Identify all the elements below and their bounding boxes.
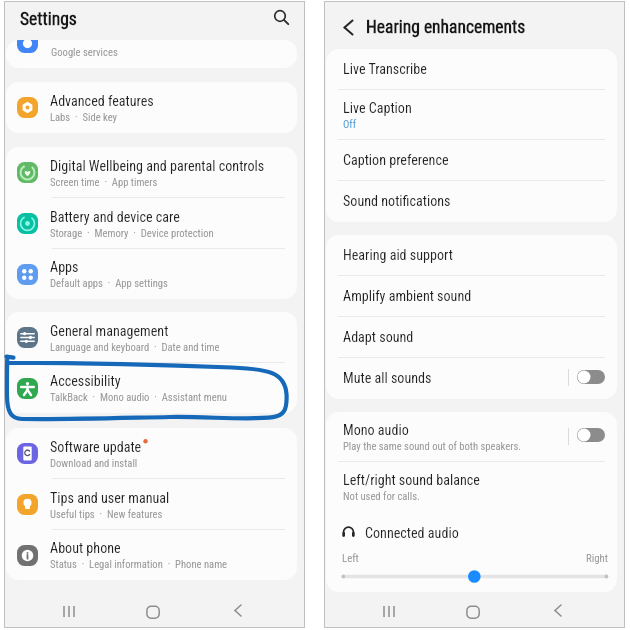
button[interactable]: Accessibility: [6, 363, 297, 413]
staticText: Sound notifications: [343, 193, 451, 210]
button[interactable]: Tips and user manual: [6, 479, 297, 530]
staticText: Connected audio: [365, 525, 459, 542]
button[interactable]: Mono audio: [326, 412, 617, 462]
staticText: Live Caption: [343, 100, 412, 117]
button[interactable]: Search: [267, 4, 293, 30]
staticText: Software update: [50, 439, 142, 456]
button[interactable]: Home: [458, 595, 488, 625]
button[interactable]: Navigate up: [338, 15, 362, 39]
button[interactable]: Recent apps: [374, 595, 404, 625]
staticText: About phone: [50, 540, 121, 557]
staticText: Battery and device care: [50, 209, 180, 226]
staticText: Default apps · App settings: [50, 277, 168, 289]
staticText: Tips and user manual: [50, 490, 170, 507]
staticText: Accessibility: [50, 373, 121, 390]
staticText: Status · Legal information · Phone name: [50, 558, 228, 570]
staticText: Hearing enhancements: [366, 17, 526, 38]
staticText: Mono audio: [343, 422, 409, 439]
button[interactable]: Adapt sound: [326, 317, 617, 358]
button[interactable]: Recent apps: [54, 595, 84, 625]
staticText: Advanced features: [50, 93, 154, 110]
staticText: Apps: [50, 259, 79, 276]
staticText: Digital Wellbeing and parental controls: [50, 158, 265, 175]
button[interactable]: Software update: [6, 428, 297, 479]
button[interactable]: Left/right sound balance: [326, 462, 617, 512]
staticText: Useful tips · New features: [50, 508, 163, 520]
button[interactable]: Mute all sounds: [577, 370, 605, 384]
button[interactable]: Back: [543, 595, 573, 625]
staticText: Adapt sound: [343, 329, 414, 346]
button[interactable]: Live Caption: [326, 90, 617, 140]
staticText: Language and keyboard · Date and time: [50, 341, 220, 353]
staticText: Caption preference: [343, 152, 449, 169]
button[interactable]: Advanced features: [6, 82, 297, 133]
staticText: Settings: [20, 9, 77, 30]
button[interactable]: Home: [138, 595, 168, 625]
button[interactable]: About phone: [6, 530, 297, 580]
staticText: Download and install: [50, 457, 138, 469]
staticText: Labs · Side key: [50, 111, 118, 123]
staticText: Live Transcribe: [343, 61, 427, 78]
button[interactable]: Battery and device care: [6, 198, 297, 249]
button[interactable]: Back: [223, 595, 253, 625]
button[interactable]: Hearing aid support: [326, 235, 617, 276]
button[interactable]: Sound notifications: [326, 181, 617, 222]
staticText: Google services: [51, 46, 118, 58]
staticText: Left: [342, 552, 359, 565]
staticText: Not used for calls.: [343, 490, 420, 502]
staticText: Play the same sound out of both speakers…: [343, 440, 522, 452]
staticText: Storage · Memory · Device protection: [50, 227, 214, 239]
staticText: TalkBack · Mono audio · Assistant menu: [50, 391, 227, 403]
staticText: General management: [50, 323, 169, 340]
staticText: Left/right sound balance: [343, 472, 480, 489]
staticText: Amplify ambient sound: [343, 288, 472, 305]
button[interactable]: Apps: [6, 249, 297, 299]
staticText: Hearing aid support: [343, 247, 453, 264]
button[interactable]: Digital Wellbeing and parental controls: [6, 147, 297, 198]
button[interactable]: Live Transcribe: [326, 49, 617, 90]
button[interactable]: General management: [6, 312, 297, 363]
button[interactable]: Amplify ambient sound: [326, 276, 617, 317]
staticText: Screen time · App timers: [50, 176, 158, 188]
staticText: Off: [343, 118, 357, 130]
staticText: Mute all sounds: [343, 370, 432, 387]
button[interactable]: Caption preference: [326, 140, 617, 181]
button[interactable]: Mono audio: [577, 428, 605, 442]
staticText: Right: [586, 552, 608, 565]
button[interactable]: Mute all sounds: [326, 358, 617, 399]
